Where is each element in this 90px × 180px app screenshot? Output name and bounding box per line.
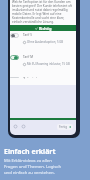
button[interactable]: Zurück xyxy=(13,124,18,129)
staticText: Richtig xyxy=(39,26,52,31)
staticText: Welche Tarifoption ist für den Kunden am… xyxy=(12,0,74,24)
staticText: Tarif M xyxy=(23,55,33,59)
button[interactable]: Fertig xyxy=(57,124,73,130)
staticText: Einfach erklärt xyxy=(4,147,56,157)
staticText: Mit Erklärvideos zu allen Fragen und The… xyxy=(4,158,61,176)
button[interactable]: Information xyxy=(21,124,26,129)
staticText: Unlimited xyxy=(23,77,38,78)
button[interactable]: Tarif S xyxy=(10,33,76,44)
button[interactable]: Richtig xyxy=(10,25,76,31)
staticText: Mit EU-Roaming inklusive, 15 GB xyxy=(27,62,70,66)
staticText: Tarif S xyxy=(23,33,32,37)
button[interactable]: Tarif M xyxy=(10,55,76,66)
staticText: Fertig xyxy=(59,125,68,129)
staticText: Ohne Auslandsoption, 5 GB xyxy=(27,40,64,44)
button[interactable]: Unlimited xyxy=(10,77,76,78)
